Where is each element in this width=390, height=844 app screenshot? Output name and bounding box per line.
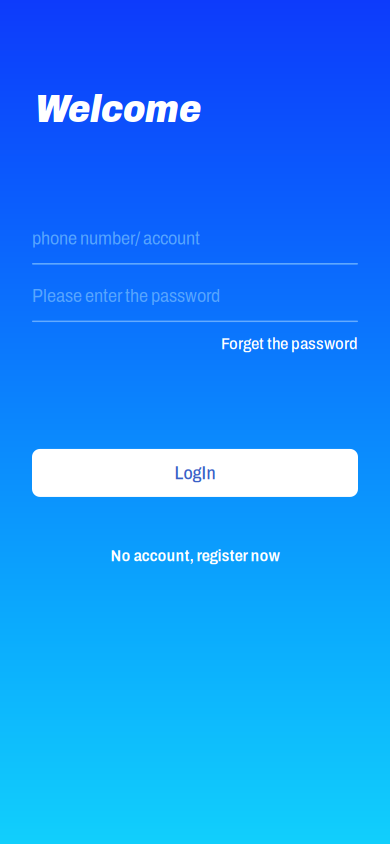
staticText: LogIn <box>174 463 215 483</box>
staticText: Please enter the password <box>32 286 220 306</box>
button[interactable]: No account, register now <box>0 546 390 565</box>
staticText: No account, register now <box>110 546 279 565</box>
staticText: phone number/ account <box>32 228 200 248</box>
staticText: Welcome <box>35 88 201 130</box>
button[interactable]: Forget the password <box>221 334 358 353</box>
button[interactable]: LogIn <box>32 449 358 497</box>
staticText: Forget the password <box>221 334 358 353</box>
